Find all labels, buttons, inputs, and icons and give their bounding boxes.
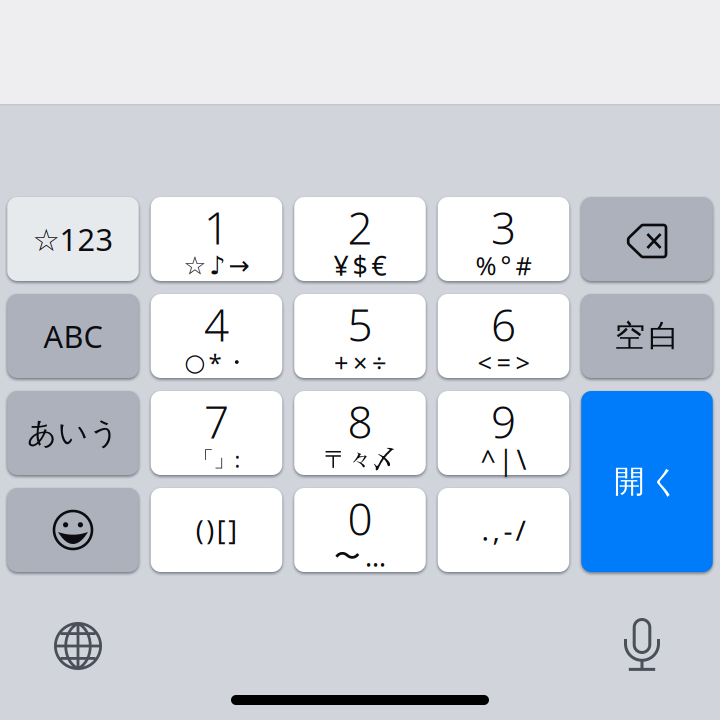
- staticText: 2: [347, 198, 372, 257]
- staticText: +: [334, 346, 348, 379]
- button[interactable]: 2: [294, 197, 426, 281]
- staticText: 3: [491, 198, 516, 257]
- staticText: =: [496, 346, 510, 379]
- staticText: -: [503, 511, 512, 549]
- button[interactable]: ABC: [7, 294, 139, 378]
- staticText: 〒: [324, 445, 348, 474]
- button[interactable]: 3: [438, 197, 569, 281]
- button[interactable]: Next keyboard: [47, 612, 109, 674]
- staticText: %: [475, 249, 496, 282]
- button[interactable]: 4: [151, 294, 282, 378]
- button[interactable]: Emoji: [7, 488, 139, 572]
- staticText: .: [481, 511, 489, 549]
- staticText: 」: [213, 446, 234, 473]
- button[interactable]: あいう: [7, 391, 139, 475]
- staticText: ♪: [209, 251, 225, 280]
- button[interactable]: ☆123: [7, 197, 139, 281]
- staticText: <: [477, 346, 491, 379]
- staticText: 「: [192, 446, 213, 473]
- button[interactable]: (: [151, 488, 282, 572]
- button[interactable]: Dictation: [611, 612, 673, 674]
- staticText: ☆: [183, 251, 206, 280]
- staticText: 8: [347, 392, 372, 451]
- staticText: ☆123: [32, 219, 113, 259]
- staticText: 1: [204, 198, 229, 257]
- staticText: ): [206, 512, 214, 548]
- staticText: 4: [204, 295, 229, 354]
- staticText: 空白: [614, 317, 679, 355]
- staticText: ○: [184, 349, 205, 376]
- staticText: …: [365, 539, 386, 574]
- button[interactable]: 5: [294, 294, 426, 378]
- staticText: *: [208, 347, 221, 378]
- staticText: #: [515, 249, 531, 282]
- staticText: $: [352, 248, 367, 283]
- staticText: ×: [353, 346, 367, 379]
- staticText: ,: [492, 511, 500, 549]
- staticText: >: [515, 346, 529, 379]
- staticText: 0: [347, 489, 372, 548]
- button[interactable]: Delete: [581, 197, 713, 281]
- staticText: |: [498, 442, 513, 477]
- button[interactable]: 空白: [581, 294, 713, 378]
- button[interactable]: 0: [294, 488, 426, 572]
- staticText: ・: [224, 348, 248, 377]
- staticText: あいう: [27, 415, 119, 451]
- staticText: 5: [347, 295, 372, 354]
- staticText: /: [515, 511, 525, 549]
- button[interactable]: 6: [438, 294, 569, 378]
- staticText: °: [500, 249, 511, 282]
- staticText: →: [228, 251, 249, 280]
- button[interactable]: 7: [151, 391, 282, 475]
- button[interactable]: 8: [294, 391, 426, 475]
- staticText: 7: [204, 392, 229, 451]
- staticText: (: [196, 512, 204, 548]
- staticText: ¥: [333, 248, 348, 283]
- button[interactable]: 1: [151, 197, 282, 281]
- staticText: 々: [348, 445, 372, 474]
- staticText: 9: [491, 392, 516, 451]
- staticText: ÷: [372, 346, 386, 379]
- staticText: \: [516, 442, 526, 477]
- staticText: :: [234, 445, 240, 474]
- staticText: €: [371, 248, 386, 283]
- staticText: ]: [228, 512, 237, 548]
- staticText: 〜: [334, 540, 361, 573]
- button[interactable]: 開く: [581, 391, 713, 572]
- staticText: ABC: [43, 316, 102, 356]
- button[interactable]: 9: [438, 391, 569, 475]
- button[interactable]: .: [438, 488, 569, 572]
- staticText: 〆: [372, 445, 396, 474]
- staticText: [: [217, 512, 226, 548]
- staticText: ^: [480, 442, 495, 477]
- staticText: 開く: [614, 463, 680, 500]
- staticText: 6: [491, 295, 516, 354]
